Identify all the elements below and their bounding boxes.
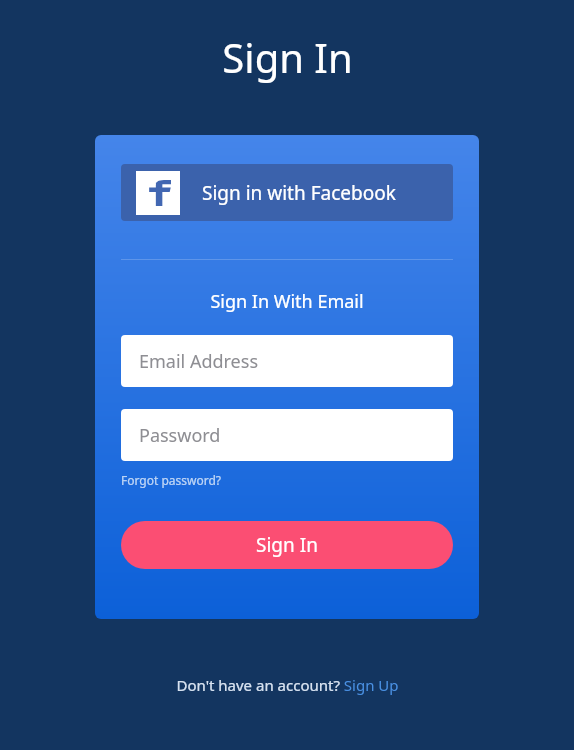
button[interactable]: Forgot password?: [121, 472, 222, 488]
staticText: Forgot password?: [121, 472, 222, 488]
staticText: Password: [139, 423, 221, 448]
staticText: Sign In: [222, 30, 353, 84]
staticText: Email Address: [139, 349, 259, 374]
staticText: Don't have an account? Sign Up: [176, 675, 399, 695]
button[interactable]: Facebook: [121, 164, 453, 221]
button[interactable]: Sign In: [121, 521, 453, 569]
button[interactable]: Email Address: [121, 335, 453, 387]
staticText: Sign in with Facebook: [202, 180, 396, 206]
other: Facebook: [145, 180, 171, 206]
staticText: Sign In: [256, 532, 318, 558]
button[interactable]: Password: [121, 409, 453, 461]
button[interactable]: Don't have an account? Sign Up: [176, 675, 399, 695]
staticText: Sign In With Email: [210, 289, 364, 314]
